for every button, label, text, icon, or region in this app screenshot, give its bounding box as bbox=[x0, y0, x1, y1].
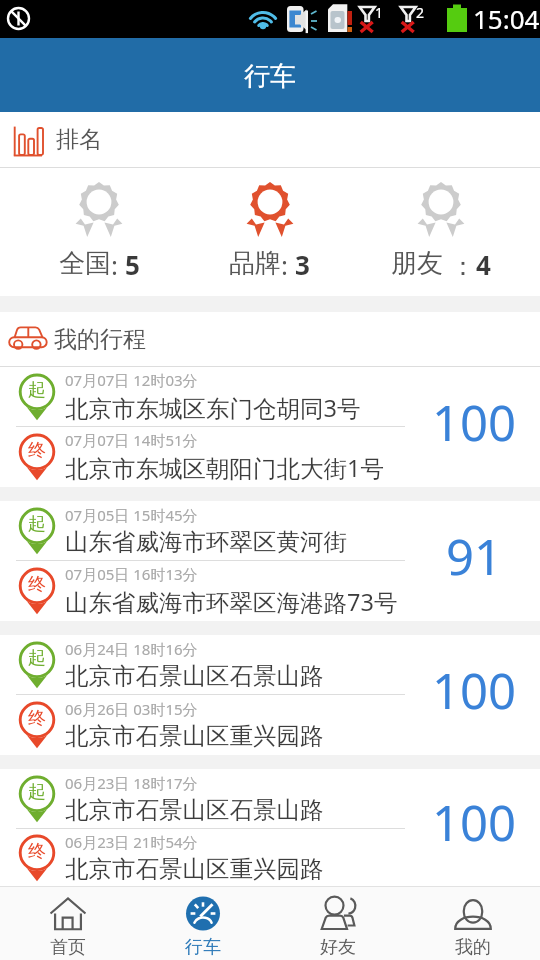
staticText: 15:04 bbox=[473, 1, 540, 36]
staticText: 起 bbox=[28, 647, 46, 670]
staticText: 起 bbox=[28, 781, 46, 804]
staticText: 山东省威海市环翠区黄河街 bbox=[65, 527, 347, 557]
button[interactable]: 全国 bbox=[14, 168, 184, 296]
staticText: 2 bbox=[416, 3, 425, 22]
staticText: 起 bbox=[28, 379, 46, 402]
staticText: 终 bbox=[28, 573, 46, 596]
staticText: : bbox=[281, 247, 295, 282]
staticText: 行车 bbox=[185, 936, 221, 959]
button[interactable]: 首页 bbox=[0, 887, 135, 960]
staticText: 好友 bbox=[320, 936, 356, 959]
staticText: 终 bbox=[28, 840, 46, 863]
staticText: : bbox=[111, 247, 125, 282]
staticText: 北京市石景山区重兴园路 bbox=[65, 721, 324, 751]
staticText: 全国 bbox=[59, 247, 111, 280]
button[interactable]: 我的 bbox=[405, 887, 540, 960]
staticText: 行车 bbox=[244, 60, 296, 93]
button[interactable]: 朋友 bbox=[355, 168, 526, 296]
staticText: 品牌 bbox=[229, 247, 281, 280]
button[interactable]: 行车 bbox=[135, 887, 270, 960]
staticText: 06月24日 18时16分 bbox=[65, 639, 198, 659]
button[interactable]: 起 bbox=[0, 635, 540, 755]
staticText: 北京市东城区朝阳门北大街1号 bbox=[65, 452, 384, 484]
staticText: 终 bbox=[28, 439, 46, 462]
staticText: 06月23日 18时17分 bbox=[65, 773, 198, 793]
staticText: 07月07日 14时51分 bbox=[65, 430, 198, 450]
staticText: 排名 bbox=[56, 125, 102, 154]
staticText: 5 bbox=[125, 247, 140, 282]
staticText: 07月05日 16时13分 bbox=[65, 564, 198, 584]
staticText: 山东省威海市环翠区海港路73号 bbox=[65, 586, 398, 618]
staticText: 91 bbox=[446, 523, 503, 590]
button[interactable]: 起 bbox=[0, 367, 540, 487]
staticText: 4 bbox=[476, 247, 491, 282]
button[interactable]: 起 bbox=[0, 501, 540, 621]
button[interactable]: 排名 bbox=[0, 112, 540, 168]
staticText: 北京市石景山区石景山路 bbox=[65, 795, 324, 825]
staticText: 我的行程 bbox=[54, 325, 146, 354]
staticText: 07月05日 15时45分 bbox=[65, 505, 198, 525]
staticText: 北京市东城区东门仓胡同3号 bbox=[65, 392, 361, 424]
button[interactable]: 起 bbox=[0, 769, 540, 886]
staticText: 1 bbox=[375, 3, 384, 22]
staticText: 06月26日 03时15分 bbox=[65, 699, 198, 719]
staticText: 北京市石景山区石景山路 bbox=[65, 661, 324, 691]
staticText: 首页 bbox=[50, 936, 86, 959]
staticText: 我的 bbox=[455, 936, 491, 959]
staticText: 100 bbox=[432, 389, 517, 456]
staticText: 起 bbox=[28, 513, 46, 536]
staticText: 朋友 bbox=[391, 247, 443, 280]
staticText: 100 bbox=[432, 657, 517, 724]
staticText: 3 bbox=[295, 247, 310, 282]
button[interactable]: 好友 bbox=[270, 887, 405, 960]
staticText: ： bbox=[443, 247, 476, 283]
button[interactable]: 我的行程 bbox=[0, 312, 540, 367]
staticText: 100 bbox=[432, 789, 517, 856]
staticText: 06月23日 21时54分 bbox=[65, 832, 198, 852]
staticText: 终 bbox=[28, 707, 46, 730]
staticText: 北京市石景山区重兴园路 bbox=[65, 854, 324, 884]
button[interactable]: 品牌 bbox=[184, 168, 355, 296]
staticText: 07月07日 12时03分 bbox=[65, 370, 198, 390]
